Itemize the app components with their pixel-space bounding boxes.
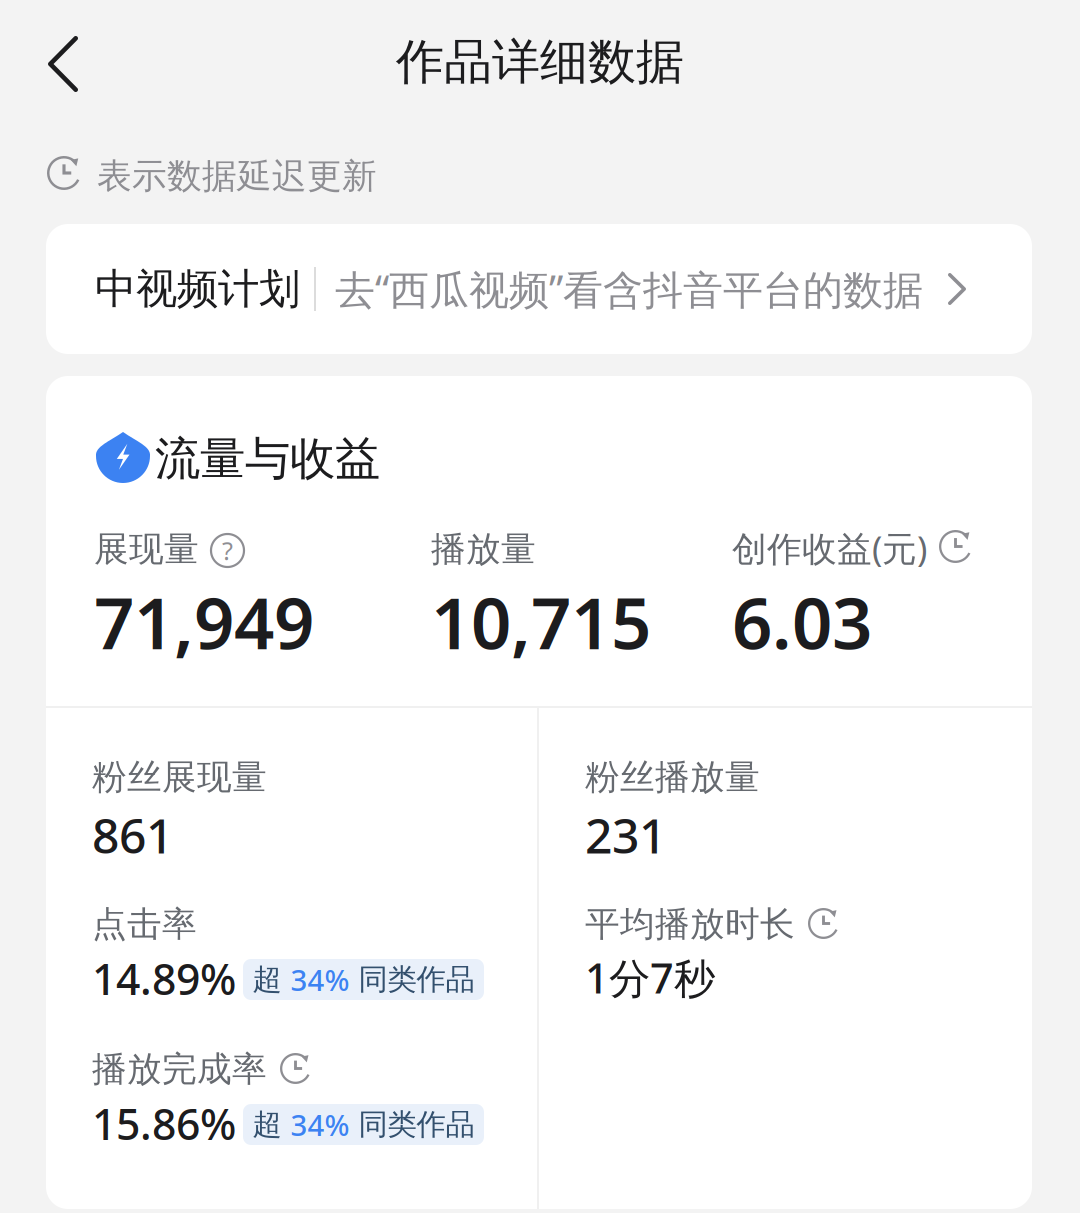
button[interactable]: 中视频计划 [46,224,1032,354]
staticText: 播放量 [431,528,536,571]
staticText: 展现量 [94,528,199,571]
staticText: 点击率 [92,903,197,946]
staticText: 1分7秒 [585,950,715,1005]
staticText: 流量与收益 [155,431,380,487]
staticText: 创作收益(元) [732,525,927,571]
staticText: 同类作品 [349,961,474,997]
staticText: 作品详细数据 [396,32,684,91]
staticText: 粉丝播放量 [585,756,760,799]
staticText: 中视频计划 [95,264,300,314]
staticText: 71,949 [94,575,314,669]
staticText: ? [222,534,233,567]
staticText: 6.03 [732,575,872,669]
staticText: 10,715 [431,575,651,669]
staticText: 861 [92,803,173,867]
staticText: 15.86% [92,1095,236,1152]
staticText: 超 [252,961,290,997]
staticText: 去“西瓜视频”看含抖音平台的数据 [335,262,923,315]
staticText: 表示数据延迟更新 [97,155,377,198]
staticText: 平均播放时长 [585,903,795,946]
staticText: 超 [252,1106,290,1142]
staticText: 14.89% [92,950,236,1007]
staticText: 播放完成率 [92,1048,267,1091]
staticText: 34% [290,1105,349,1144]
staticText: 粉丝展现量 [92,756,267,799]
staticText: 231 [585,803,666,867]
button[interactable]: 返回 [7,8,119,120]
staticText: 34% [290,960,349,999]
staticText: 同类作品 [349,1106,474,1142]
